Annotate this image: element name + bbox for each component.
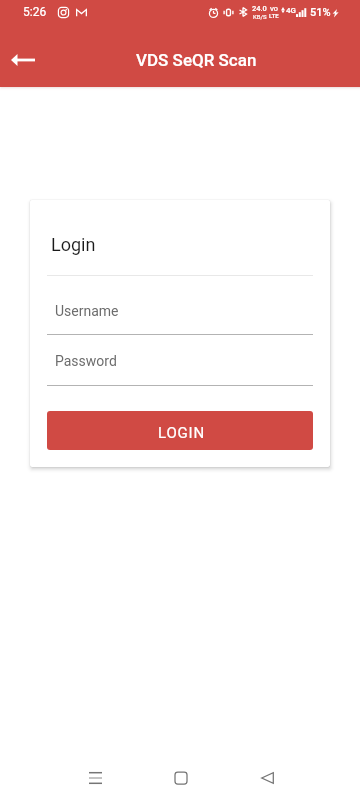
- staticText: Login: [51, 234, 96, 255]
- staticText: 24.0: [252, 4, 267, 13]
- staticText: Username: [55, 303, 119, 319]
- button[interactable]: Back: [244, 755, 290, 800]
- button[interactable]: Back: [0, 37, 46, 83]
- staticText: LOGIN: [158, 424, 205, 442]
- staticText: VDS SeQR Scan: [136, 50, 257, 70]
- staticText: Password: [55, 353, 117, 369]
- button[interactable]: Home: [158, 755, 204, 800]
- button[interactable]: Recent apps: [72, 755, 118, 800]
- staticText: 5:26: [23, 5, 47, 19]
- staticText: LTE: [269, 12, 279, 19]
- staticText: VO: [270, 5, 278, 12]
- staticText: 51%: [310, 6, 331, 19]
- staticText: KB/S: [253, 13, 267, 20]
- button[interactable]: LOGIN: [47, 411, 313, 450]
- staticText: 4G: [286, 6, 296, 15]
